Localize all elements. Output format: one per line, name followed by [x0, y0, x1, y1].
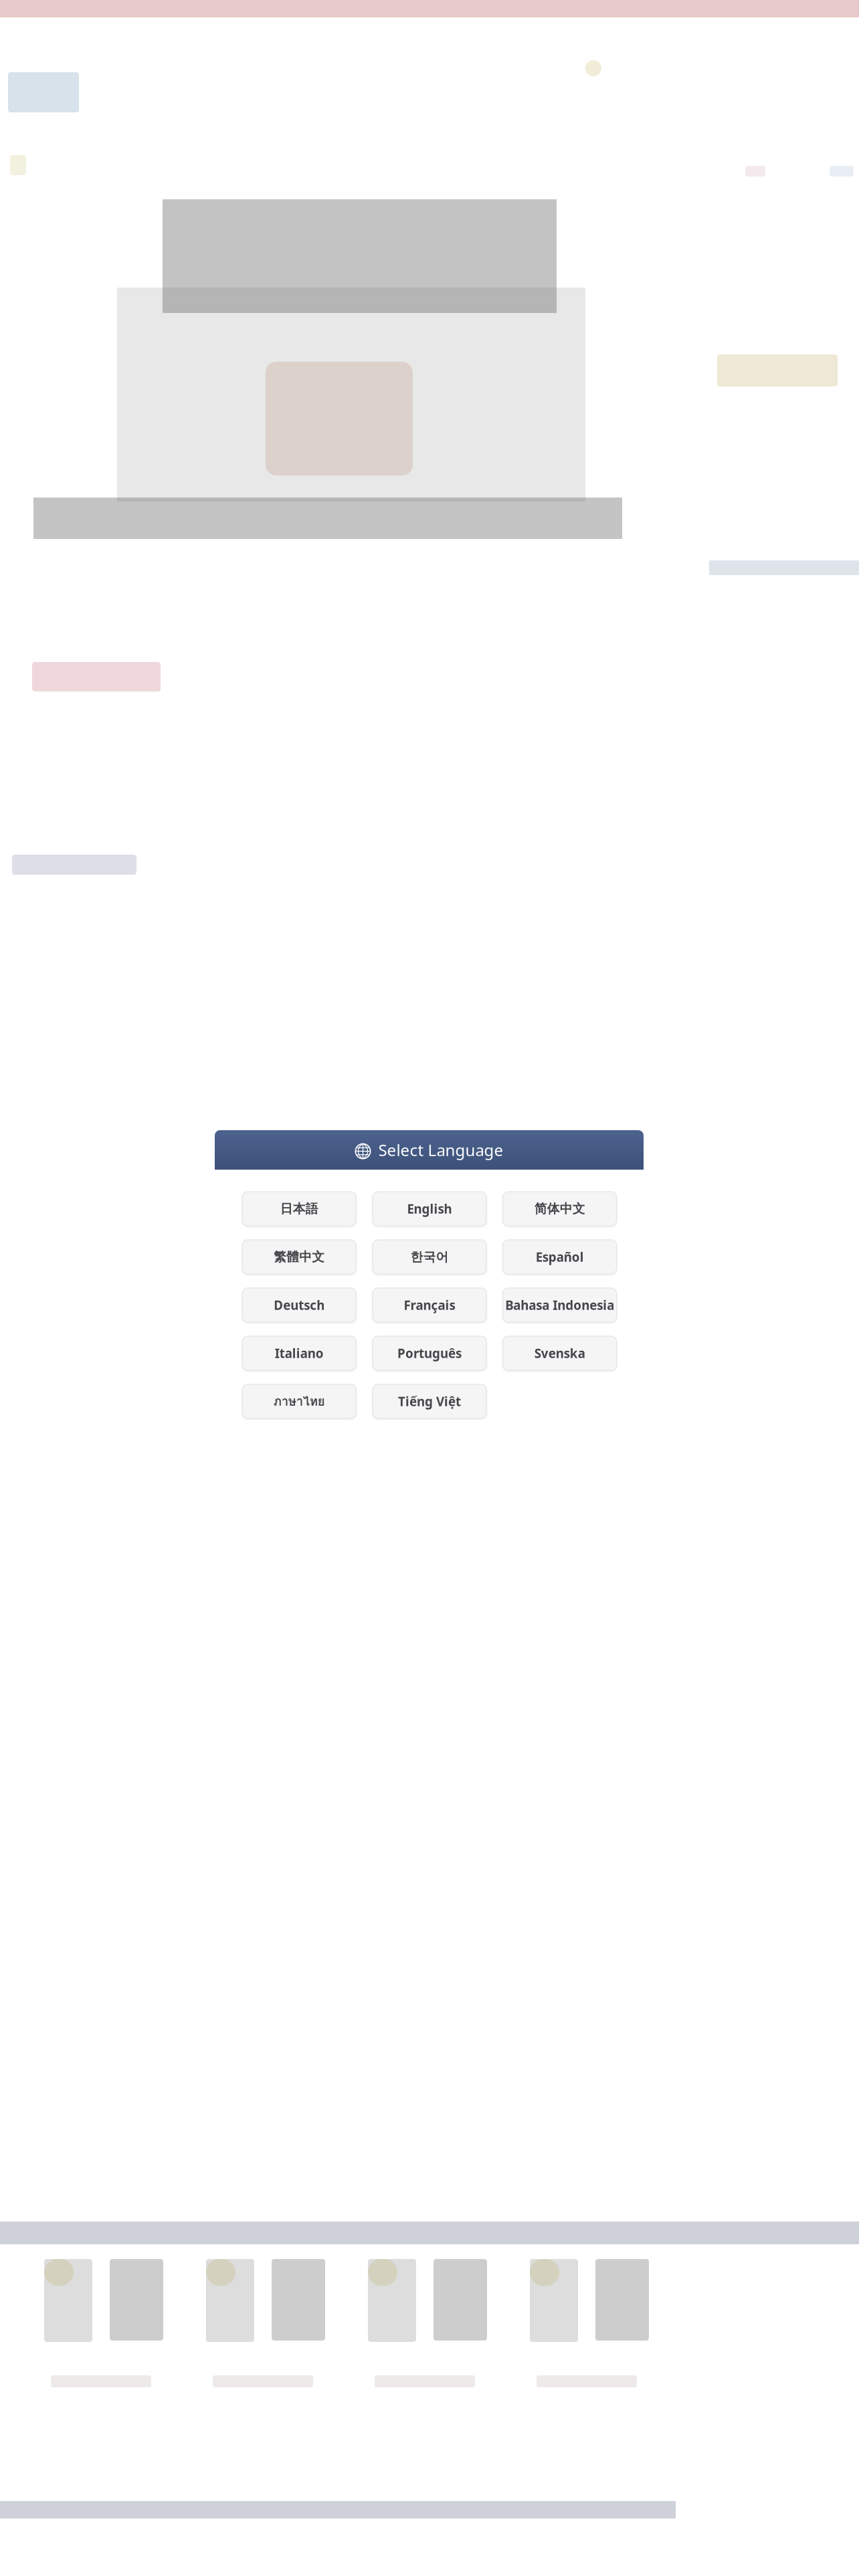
button[interactable]: Svenska: [503, 1336, 617, 1370]
button[interactable]: Español: [503, 1240, 617, 1274]
button[interactable]: 한국어: [373, 1240, 486, 1274]
staticText: English: [407, 1200, 452, 1217]
staticText: 简体中文: [534, 1201, 585, 1216]
staticText: 한국어: [410, 1249, 449, 1265]
button[interactable]: Português: [373, 1336, 486, 1370]
staticText: Bahasa Indonesia: [505, 1297, 614, 1313]
staticText: Svenska: [534, 1345, 585, 1361]
button[interactable]: Français: [373, 1288, 486, 1322]
staticText: Deutsch: [274, 1297, 325, 1313]
button[interactable]: Italiano: [243, 1336, 356, 1370]
button[interactable]: Deutsch: [243, 1288, 356, 1322]
button[interactable]: 简体中文: [503, 1192, 617, 1226]
staticText: Español: [536, 1249, 584, 1265]
staticText: Português: [397, 1345, 462, 1361]
button[interactable]: Tiếng Việt: [373, 1384, 486, 1418]
staticText: Select Language: [378, 1139, 503, 1161]
staticText: Tiếng Việt: [398, 1393, 461, 1410]
button[interactable]: 繁體中文: [243, 1240, 356, 1274]
button[interactable]: Bahasa Indonesia: [503, 1288, 617, 1322]
button[interactable]: ภาษาไทย: [243, 1384, 356, 1418]
button[interactable]: English: [373, 1192, 486, 1226]
button[interactable]: 日本語: [243, 1192, 356, 1226]
staticText: Italiano: [275, 1345, 324, 1361]
staticText: 繁體中文: [274, 1249, 325, 1265]
staticText: 日本語: [280, 1201, 318, 1216]
staticText: ภาษาไทย: [273, 1392, 325, 1411]
staticText: Français: [404, 1297, 455, 1313]
